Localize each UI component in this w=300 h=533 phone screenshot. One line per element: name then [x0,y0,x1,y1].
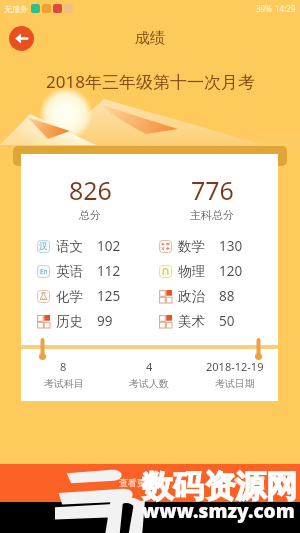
button[interactable]: Back [9,26,34,51]
staticText: 2018年三年级第十一次月考 [46,70,255,93]
staticText: 8 [60,359,67,374]
staticText: 英语 [56,263,83,280]
staticText: 120 [219,262,243,280]
staticText: 美术 [178,313,205,330]
staticText: 历史 [56,313,83,330]
staticText: 4 [146,359,153,374]
staticText: 2018-12-19 [206,359,264,374]
staticText: 数码资源网 [142,467,297,506]
staticText: 查看更多 [119,477,155,488]
staticText: 112 [97,262,121,280]
staticText: www.smzy.com [142,498,295,524]
staticText: En [40,267,48,276]
staticText: 39% [256,3,272,14]
staticText: 物理 [178,263,205,280]
staticText: 总分 [79,208,101,222]
staticText: 99 [97,312,113,330]
staticText: 数学 [178,238,205,255]
staticText: 化学 [56,288,83,305]
staticText: 50 [219,312,235,330]
staticText: 考试人数 [129,377,169,390]
staticText: 102 [97,237,121,255]
staticText: 14:29 [275,3,296,14]
staticText: 无服务 [4,4,28,14]
staticText: 776 [191,173,234,207]
staticText: 826 [69,173,112,207]
staticText: 考试科目 [44,377,84,390]
staticText: 考试日期 [215,377,255,390]
staticText: 125 [97,287,121,305]
staticText: 主科总分 [190,208,234,222]
staticText: 130 [219,237,243,255]
staticText: 语文 [56,238,83,255]
staticText: 政治 [178,288,205,305]
staticText: 成绩 [135,29,165,48]
staticText: 88 [219,287,235,305]
staticText: 汉 [39,241,48,252]
